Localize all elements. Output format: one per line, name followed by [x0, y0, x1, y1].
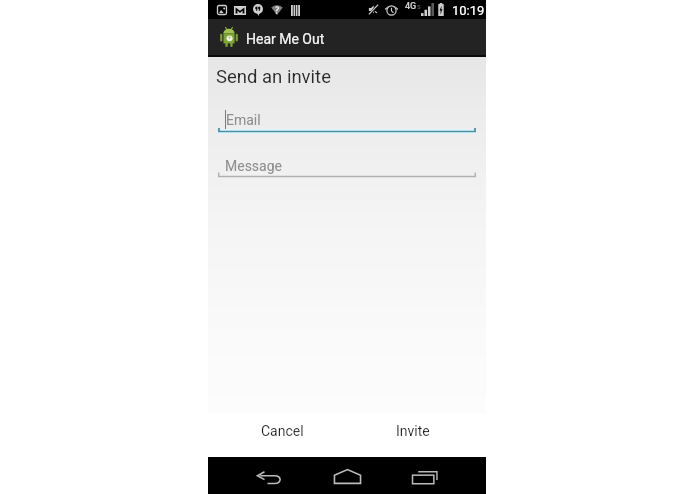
button[interactable]: Back	[239, 457, 299, 494]
staticText: Message	[225, 158, 282, 174]
button[interactable]: Email	[218, 104, 476, 134]
button[interactable]: Message	[218, 150, 476, 180]
button[interactable]: Invite	[377, 412, 449, 449]
button[interactable]: Home	[317, 457, 377, 494]
staticText: Send an invite	[216, 66, 331, 88]
staticText: Cancel	[261, 423, 304, 439]
staticText: Hear Me Out	[246, 31, 325, 47]
staticText: s	[417, 3, 421, 11]
button[interactable]: Cancel	[241, 412, 323, 449]
staticText: Invite	[396, 423, 430, 439]
staticText: Email	[226, 112, 261, 128]
staticText: 4G	[405, 1, 417, 12]
button[interactable]: Recent apps	[395, 457, 455, 494]
staticText: 10:19	[452, 3, 485, 18]
